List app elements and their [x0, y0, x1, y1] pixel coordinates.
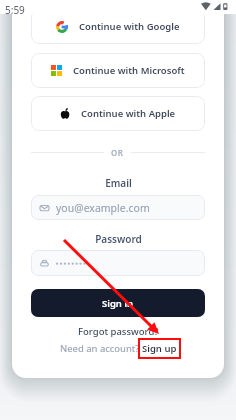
button[interactable]: Continue with Microsoft — [31, 53, 205, 88]
staticText: Continue with Microsoft — [73, 64, 185, 77]
button[interactable]: you@example.com — [31, 195, 205, 220]
staticText: Continue with Apple — [81, 107, 176, 120]
staticText: 5:59 — [5, 3, 25, 17]
staticText: Need an account? — [60, 342, 142, 355]
staticText: Password — [95, 232, 142, 246]
button[interactable]: Sign in — [31, 289, 205, 317]
button[interactable]: Forgot password? — [74, 324, 163, 339]
button[interactable]: Continue with Google — [31, 9, 205, 44]
staticText: Sign in — [102, 297, 134, 310]
button[interactable]: Continue with Apple — [31, 96, 205, 131]
button[interactable]: Sign up — [142, 342, 177, 355]
staticText: Continue with Google — [79, 20, 180, 33]
staticText: OR — [111, 147, 124, 158]
staticText: you@example.com — [56, 201, 150, 215]
button[interactable] — [31, 250, 205, 276]
staticText: Email — [105, 176, 132, 190]
